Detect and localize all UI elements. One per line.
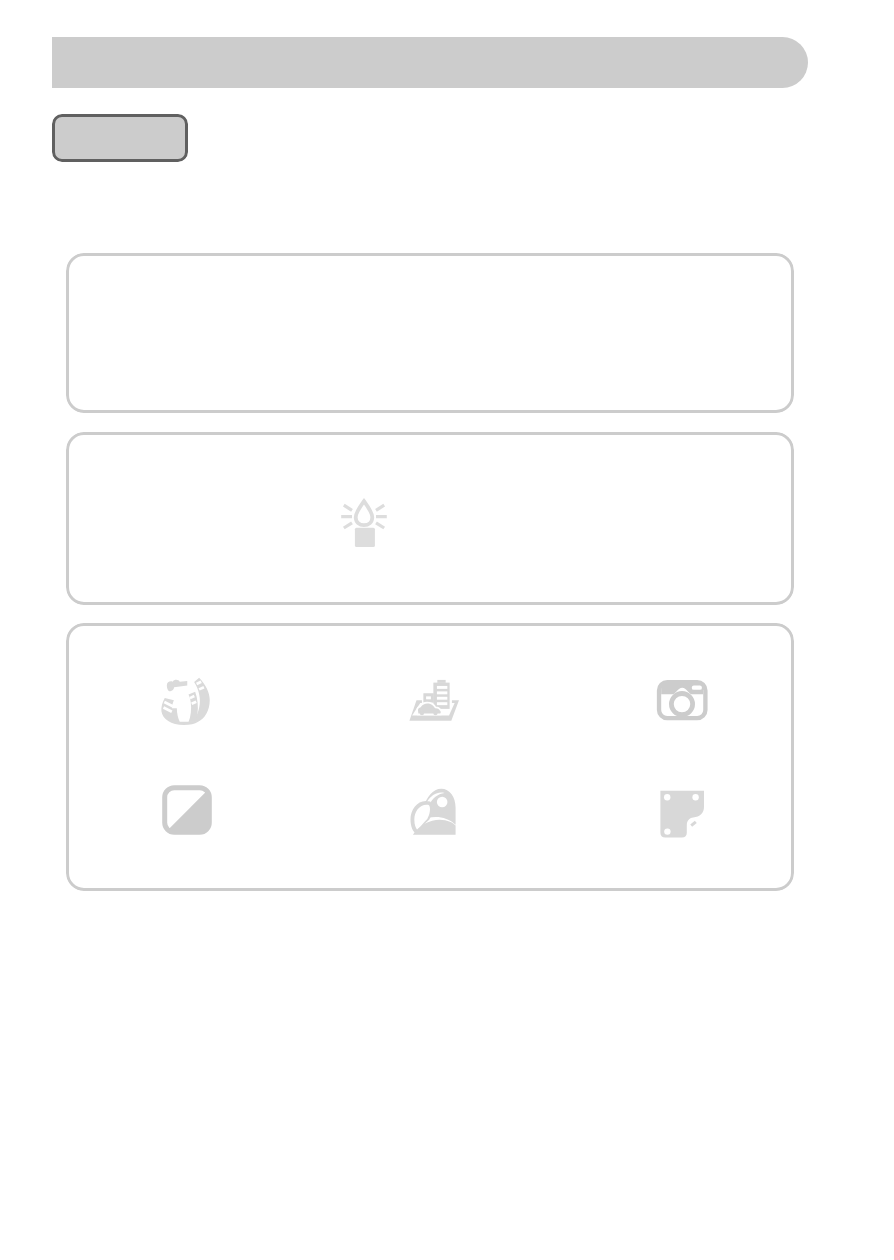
button[interactable]: Camera xyxy=(656,674,708,726)
button[interactable]: Candle xyxy=(66,432,794,605)
button[interactable]: Photo sphere xyxy=(161,675,211,725)
button[interactable]: Tonality xyxy=(162,785,212,835)
button[interactable]: Title xyxy=(52,37,808,88)
button[interactable]: Miniature xyxy=(409,677,459,727)
button[interactable]: Action xyxy=(52,114,188,162)
button[interactable]: Candle xyxy=(340,500,388,548)
button[interactable]: Photo sphere xyxy=(66,623,794,891)
button[interactable]: Film xyxy=(658,790,706,838)
button[interactable] xyxy=(66,253,794,413)
button[interactable]: Landscape xyxy=(410,786,458,834)
